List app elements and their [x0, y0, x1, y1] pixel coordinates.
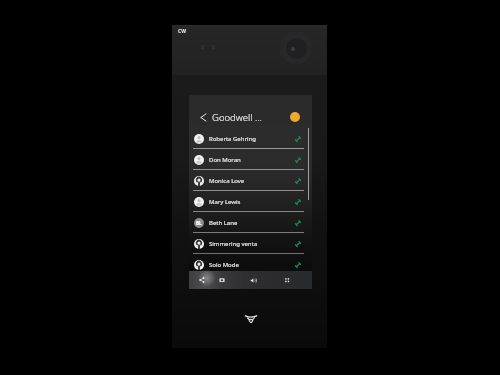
staticText: Don Moran: [209, 156, 241, 164]
button[interactable]: BL: [189, 212, 312, 233]
staticText: Solo Mode: [209, 261, 239, 269]
button[interactable]: Share: [193, 271, 211, 289]
button[interactable]: Camera: [213, 271, 231, 289]
staticText: Simmering venta: [209, 240, 258, 248]
button[interactable]: More: [278, 271, 296, 289]
button[interactable]: Don Moran: [189, 149, 312, 170]
staticText: Monica Love: [209, 177, 245, 185]
staticText: Mary Lewis: [209, 198, 241, 206]
button[interactable]: Solo Mode: [189, 254, 312, 275]
button[interactable]: Profile: [290, 112, 300, 122]
button[interactable]: Roberta Gehring: [189, 128, 312, 149]
staticText: Beth Lane: [209, 219, 238, 227]
button[interactable]: Monica Love: [189, 170, 312, 191]
button[interactable]: Mary Lewis: [189, 191, 312, 212]
staticText: CW: [178, 28, 187, 35]
staticText: Roberta Gehring: [209, 135, 256, 143]
button[interactable]: Back: [198, 112, 209, 123]
button[interactable]: Volume: [244, 271, 262, 289]
button[interactable]: Simmering venta: [189, 233, 312, 254]
staticText: Goodwell ...: [212, 111, 262, 124]
staticText: BL: [196, 220, 202, 226]
